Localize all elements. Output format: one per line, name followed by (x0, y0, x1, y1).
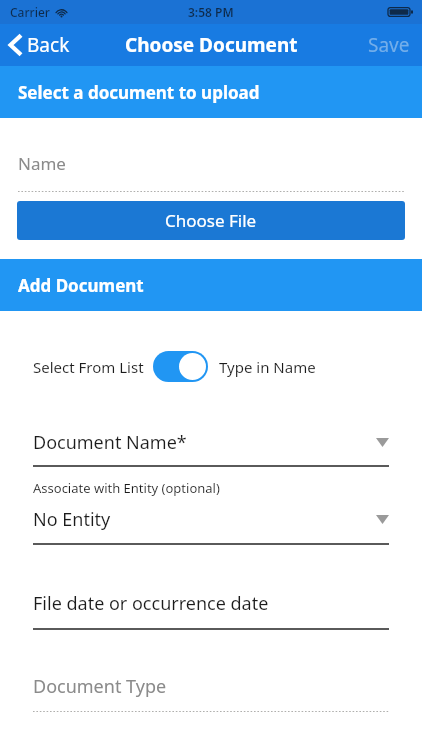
staticText: 3:58 PM (188, 4, 234, 20)
staticText: Name (18, 152, 66, 175)
button[interactable]: No Entity (0, 507, 422, 532)
button[interactable]: Document Type (0, 674, 422, 699)
staticText: No Entity (33, 507, 111, 532)
button[interactable]: Choose File (17, 201, 405, 240)
staticText: Document Type (33, 674, 167, 699)
staticText: Save (368, 32, 410, 58)
staticText: Choose Document (125, 32, 298, 58)
staticText: File date or occurrence date (33, 591, 269, 616)
staticText: Document Name* (33, 430, 187, 455)
staticText: Back (27, 32, 70, 58)
staticText: Select a document to upload (18, 81, 260, 104)
staticText: Associate with Entity (optional) (33, 479, 220, 497)
staticText: Type in Name (219, 357, 316, 377)
staticText: Choose File (165, 209, 257, 232)
button[interactable]: File date or occurrence date (0, 591, 422, 616)
button[interactable]: Back (0, 28, 82, 62)
button[interactable]: Select From List (0, 351, 422, 382)
staticText: Add Document (18, 274, 144, 297)
staticText: Carrier (10, 4, 50, 20)
staticText: Select From List (33, 357, 144, 377)
button[interactable]: Document Name* (0, 430, 422, 455)
button[interactable]: Save (356, 26, 422, 64)
